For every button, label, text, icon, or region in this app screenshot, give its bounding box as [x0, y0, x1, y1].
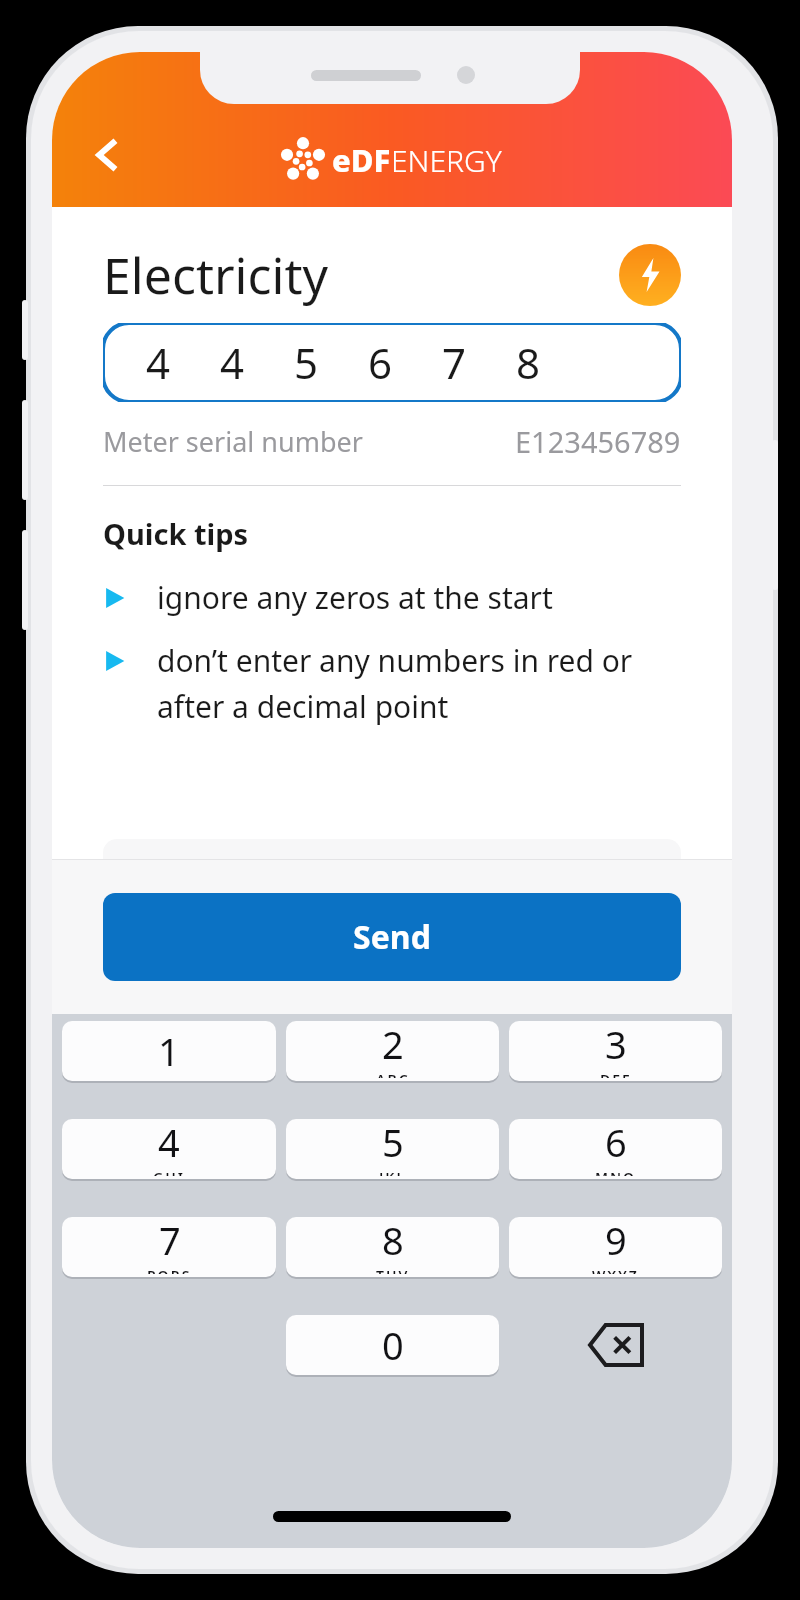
staticText: 7 [159, 1217, 181, 1266]
button[interactable]: 1 [62, 1021, 276, 1081]
staticText: MNO [595, 1168, 637, 1176]
staticText: 5 [294, 334, 319, 391]
staticText: Electricity [103, 241, 328, 309]
button[interactable]: 7 [62, 1217, 276, 1277]
staticText: 9 [605, 1217, 627, 1266]
staticText: JKL [379, 1168, 407, 1176]
staticText: 1 [158, 1025, 180, 1077]
staticText: DEF [600, 1070, 632, 1078]
staticText: 0 [382, 1319, 404, 1371]
staticText: GHI [153, 1168, 185, 1176]
staticText: ABC [376, 1070, 410, 1078]
button[interactable]: 5 [286, 1119, 499, 1179]
button[interactable]: Delete [571, 1315, 661, 1375]
staticText: ENERGY [391, 140, 502, 181]
button[interactable]: 9 [509, 1217, 722, 1277]
button[interactable]: 4 [103, 323, 681, 402]
staticText: 3 [605, 1021, 627, 1070]
button[interactable]: 3 [509, 1021, 722, 1081]
staticText: E123456789 [515, 422, 681, 461]
staticText: 2 [382, 1021, 404, 1070]
staticText: ignore any zeros at the start [157, 577, 553, 618]
button[interactable]: 8 [286, 1217, 499, 1277]
staticText: 6 [605, 1119, 627, 1168]
button[interactable]: 2 [286, 1021, 499, 1081]
staticText: 6 [368, 334, 393, 391]
button[interactable]: 0 [286, 1315, 499, 1375]
staticText: 8 [516, 334, 541, 391]
staticText: 8 [382, 1217, 404, 1266]
staticText: 4 [158, 1119, 180, 1168]
staticText: Send [353, 915, 431, 959]
staticText: WXYZ [592, 1266, 639, 1274]
staticText: Meter serial number [103, 423, 363, 460]
staticText: eDF [332, 139, 391, 181]
staticText: TUV [376, 1266, 410, 1274]
button[interactable]: Send [103, 893, 681, 981]
staticText: 4 [220, 334, 245, 391]
staticText: 4 [146, 334, 171, 391]
button[interactable]: 4 [62, 1119, 276, 1179]
staticText: PQRS [147, 1266, 192, 1274]
staticText: 7 [442, 334, 467, 391]
button[interactable]: 6 [509, 1119, 722, 1179]
staticText: don’t enter any numbers in red or after … [157, 640, 633, 727]
staticText: Quick tips [103, 514, 249, 553]
staticText: 5 [382, 1119, 404, 1168]
button[interactable]: Back [80, 127, 136, 183]
